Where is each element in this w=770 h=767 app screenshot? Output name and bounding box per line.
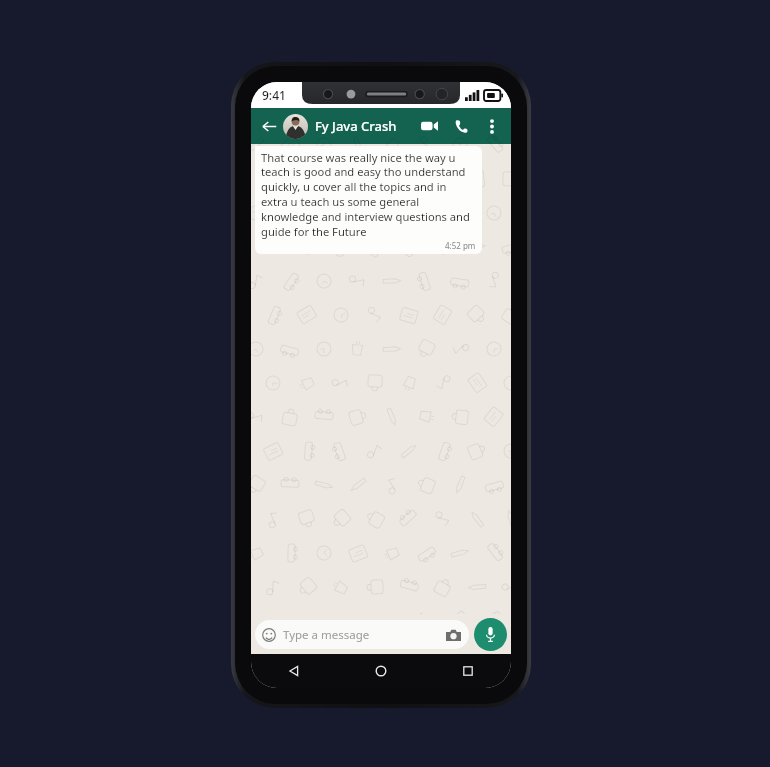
button[interactable]: Back [257,114,281,138]
staticText: 9:41 [262,87,286,103]
staticText: That course was really nice the way u te… [261,150,476,240]
button[interactable]: Camera [444,626,462,644]
button[interactable]: Record voice message [474,618,507,651]
button[interactable]: Back [251,654,337,688]
staticText: 4:52 pm [445,240,476,251]
button[interactable]: That course was really nice the way u te… [255,146,482,254]
staticText: Type a message [283,627,370,643]
staticText: Fy Java Crash Course [315,117,417,135]
button[interactable]: Video call [417,114,441,138]
button[interactable]: Home [337,654,424,688]
button[interactable]: More options [481,115,503,137]
button[interactable]: Recent apps [424,654,511,688]
button[interactable]: Fy Java Crash Course [315,117,417,135]
button[interactable]: Type a message [255,620,469,649]
button[interactable]: Voice call [449,114,473,138]
